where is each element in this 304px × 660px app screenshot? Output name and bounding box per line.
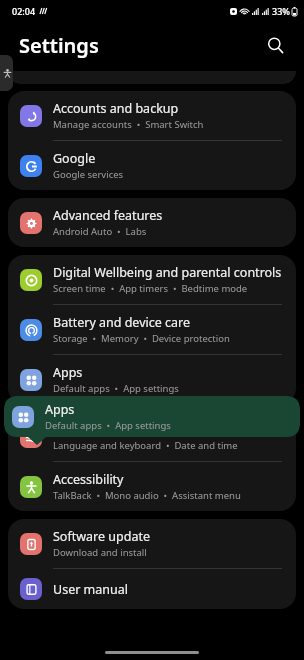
staticText: Accounts and backup [53,100,179,117]
button[interactable]: Apps [12,399,304,434]
staticText: Accessibility [53,471,124,488]
button[interactable]: Apps [8,355,296,404]
button[interactable]: Accessibility shortcut [0,55,13,91]
button[interactable]: Google [8,141,296,190]
staticText: Apps [53,364,83,381]
staticText: Manage accounts • Smart Switch [53,118,204,131]
staticText: TalkBack • Mono audio • Assistant menu [53,489,241,502]
staticText: Android Auto • Labs [53,225,147,238]
staticText: Download and install [53,546,147,559]
button[interactable]: Accessibility [8,462,296,511]
staticText: User manual [53,581,128,598]
button[interactable]: User manual [8,569,296,609]
staticText: Digital Wellbeing and parental controls [53,264,282,281]
staticText: Language and keyboard • Date and time [53,439,238,452]
staticText: 02:04 [12,5,36,17]
button[interactable]: Search [259,29,291,61]
staticText: Google services [53,168,124,181]
staticText: Screen time • App timers • Bedtime mode [53,282,248,295]
button[interactable]: Advanced features [8,198,296,247]
button[interactable]: Software update [8,519,296,568]
staticText: Storage • Memory • Device protection [53,332,230,345]
staticText: General management [53,421,182,438]
staticText: Battery and device care [53,314,191,331]
staticText: 33% [272,5,290,17]
button[interactable]: General management [8,412,296,461]
button[interactable]: Accounts and backup [8,91,296,140]
staticText: Default apps • App settings [53,382,179,395]
staticText: Advanced features [53,207,163,224]
staticText: Default apps • App settings [45,419,171,432]
staticText: Google [53,150,96,167]
button[interactable]: Battery and device care [8,305,296,354]
staticText: Apps [45,401,75,418]
staticText: Settings [19,32,99,59]
button[interactable]: Digital Wellbeing and parental controls [8,255,296,304]
staticText: Software update [53,528,150,545]
